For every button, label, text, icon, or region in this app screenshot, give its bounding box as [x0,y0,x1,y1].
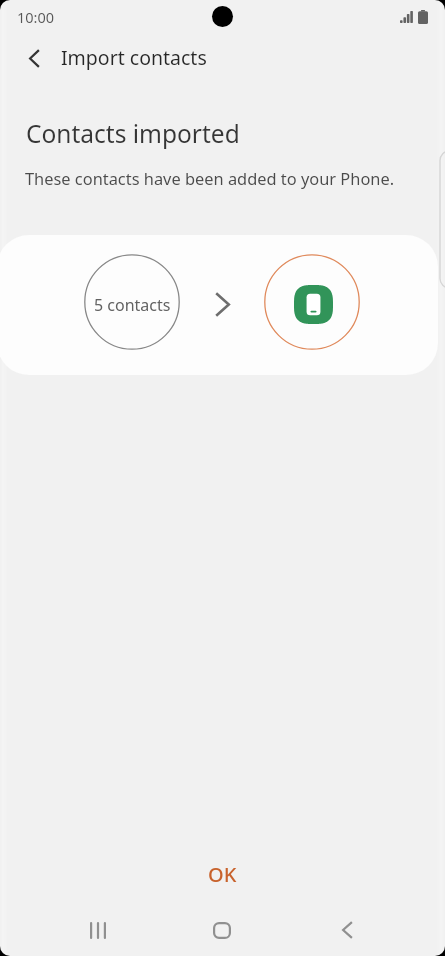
staticText: 5 contacts [94,294,171,316]
button[interactable]: Recent apps [64,902,132,956]
button[interactable]: Home [188,902,256,956]
staticText: OK [208,861,237,888]
button[interactable]: OK [0,850,445,898]
button[interactable]: Back [313,902,381,956]
staticText: Contacts imported [26,117,240,150]
staticText: Import contacts [61,44,207,71]
staticText: 10:00 [17,7,55,27]
button[interactable]: Back [10,34,58,82]
staticText: These contacts have been added to your P… [25,167,395,189]
